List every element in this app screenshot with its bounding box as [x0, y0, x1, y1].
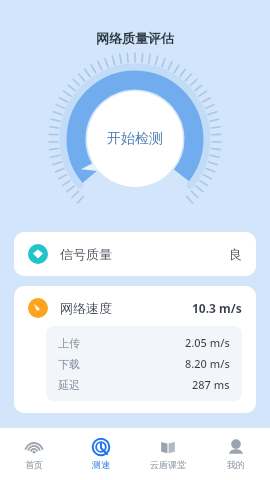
staticText: 信号质量 [60, 246, 112, 262]
button[interactable]: 测速 [67, 428, 134, 480]
staticText: 上传 [58, 336, 80, 350]
button[interactable]: 信号质量 [14, 232, 256, 276]
staticText: 10.3 m/s [192, 300, 242, 316]
staticText: 开始检测 [107, 130, 163, 148]
button[interactable]: 开始检测 [49, 53, 221, 225]
staticText: 首页 [25, 459, 43, 470]
staticText: 8.20 m/s [185, 356, 230, 371]
button[interactable]: 云盾课堂 [134, 428, 202, 480]
staticText: 网络质量评估 [96, 30, 174, 46]
staticText: 网络速度 [60, 300, 112, 316]
staticText: 下载 [58, 357, 80, 371]
staticText: 2.05 m/s [185, 335, 230, 350]
staticText: 良 [229, 246, 242, 262]
button[interactable]: 首页 [0, 428, 67, 480]
staticText: 延迟 [58, 378, 80, 392]
button[interactable]: 我的 [202, 428, 270, 480]
staticText: 我的 [227, 459, 245, 470]
button[interactable]: 网络速度 [14, 286, 256, 413]
staticText: 287 ms [192, 377, 230, 392]
staticText: 云盾课堂 [150, 459, 186, 470]
staticText: 测速 [92, 459, 110, 470]
